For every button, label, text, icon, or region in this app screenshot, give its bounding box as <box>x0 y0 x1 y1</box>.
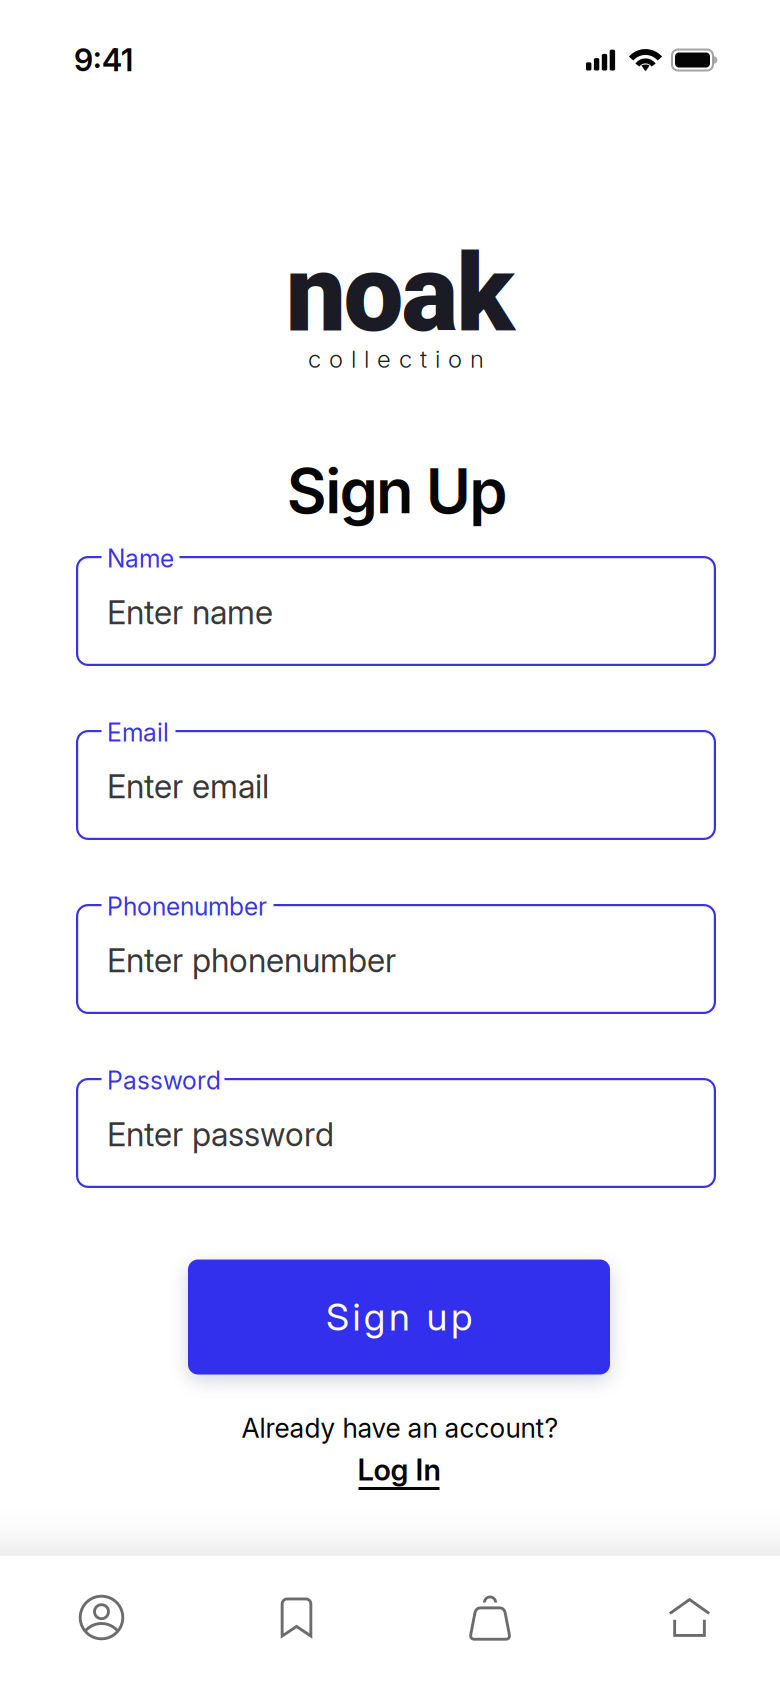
staticText: Sign Up <box>287 454 507 528</box>
staticText: Sign up <box>326 1294 472 1340</box>
staticText: Enter password <box>107 1115 334 1154</box>
staticText: Enter name <box>107 593 273 632</box>
staticText: Enter email <box>107 767 269 806</box>
button[interactable]: Bag <box>394 1546 589 1689</box>
staticText: Enter phonenumber <box>107 941 396 980</box>
button[interactable]: Enter password <box>76 1078 716 1188</box>
button[interactable]: Enter name <box>76 556 716 666</box>
staticText: Log In <box>357 1452 440 1487</box>
button[interactable]: Sign up <box>188 1259 610 1374</box>
button[interactable]: Saved <box>199 1546 394 1689</box>
button[interactable]: Home <box>592 1546 780 1689</box>
button[interactable]: Profile <box>4 1546 199 1689</box>
staticText: Password <box>107 1065 221 1095</box>
staticText: Already have an account? <box>241 1412 558 1444</box>
staticText: noak <box>286 231 514 356</box>
button[interactable]: Enter phonenumber <box>76 904 716 1014</box>
staticText: 9:41 <box>74 41 133 78</box>
button[interactable]: Enter email <box>76 730 716 840</box>
staticText: Name <box>107 543 174 573</box>
button[interactable]: Log In <box>358 1452 439 1490</box>
staticText: Email <box>107 717 169 747</box>
staticText: Phonenumber <box>107 891 267 921</box>
staticText: collection <box>308 344 484 373</box>
